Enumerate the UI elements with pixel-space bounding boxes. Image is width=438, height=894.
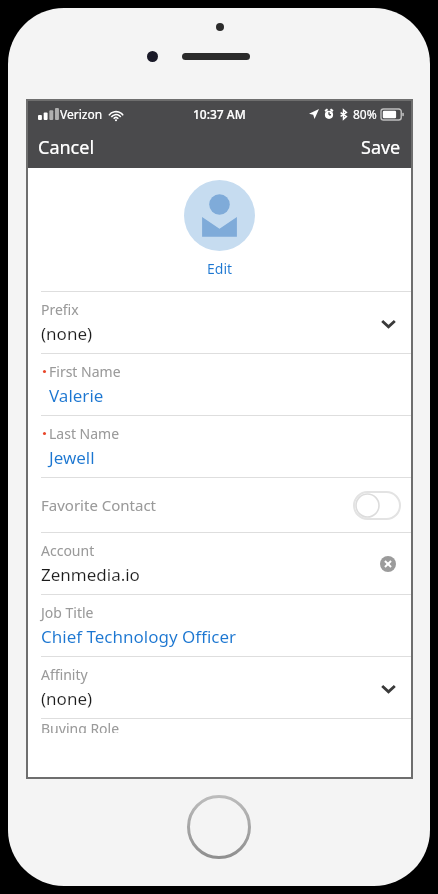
- staticText: 80%: [353, 106, 377, 122]
- staticText: Save: [361, 135, 401, 160]
- button[interactable]: Open Prefix picker: [374, 309, 402, 337]
- button[interactable]: Prefix: [27, 292, 412, 353]
- button[interactable]: Job Title: [27, 595, 412, 656]
- staticText: Verizon: [60, 106, 103, 122]
- staticText: Job Title: [41, 603, 94, 622]
- button[interactable]: Favorite Contact toggle, off: [354, 492, 400, 519]
- button[interactable]: Edit: [199, 257, 241, 280]
- staticText: Last Name: [49, 424, 120, 443]
- button[interactable]: Account: [27, 533, 412, 594]
- button[interactable]: Open Affinity picker: [374, 674, 402, 702]
- staticText: Valerie: [49, 384, 104, 407]
- button[interactable]: Favorite Contact: [27, 478, 412, 532]
- button[interactable]: Clear Account: [374, 550, 402, 578]
- staticText: Buying Role: [41, 719, 120, 733]
- staticText: Edit: [207, 259, 233, 278]
- button[interactable]: Affinity: [27, 657, 412, 718]
- button[interactable]: Cancel: [27, 128, 106, 167]
- button[interactable]: Buying Role: [27, 719, 412, 733]
- button[interactable]: Edit photo: [184, 180, 255, 251]
- staticText: First Name: [49, 362, 121, 381]
- button[interactable]: Save: [350, 128, 412, 167]
- button[interactable]: First Name: [27, 354, 412, 415]
- staticText: Prefix: [41, 300, 79, 319]
- staticText: Account: [41, 541, 95, 560]
- button[interactable]: Last Name: [27, 416, 412, 477]
- staticText: Affinity: [41, 665, 88, 684]
- staticText: 10:37 AM: [193, 106, 246, 122]
- staticText: Jewell: [49, 446, 95, 469]
- staticText: Cancel: [38, 135, 95, 160]
- staticText: Favorite Contact: [41, 495, 157, 515]
- staticText: (none): [41, 687, 93, 710]
- staticText: Zenmedia.io: [41, 563, 140, 586]
- staticText: Chief Technology Officer: [41, 625, 237, 648]
- staticText: (none): [41, 322, 93, 345]
